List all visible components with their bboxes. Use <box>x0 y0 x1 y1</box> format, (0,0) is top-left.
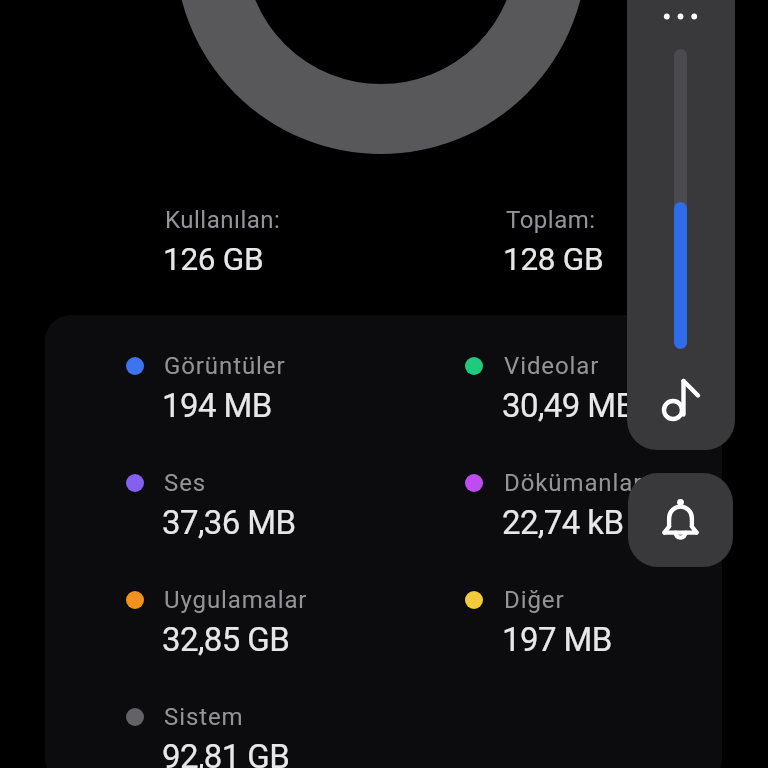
staticText: Uygulamalar <box>164 586 308 614</box>
staticText: Sistem <box>164 703 244 731</box>
staticText: Görüntüler <box>164 352 286 380</box>
staticText: 128 GB <box>503 241 604 278</box>
staticText: 126 GB <box>163 241 264 278</box>
staticText: 22,74 kB <box>502 503 624 542</box>
button[interactable] <box>45 315 722 768</box>
staticText: Dökümanlar <box>504 469 643 497</box>
staticText: Toplam: <box>506 206 596 234</box>
staticText: Kullanılan: <box>165 206 281 234</box>
button[interactable] <box>627 0 735 450</box>
staticText: 37,36 MB <box>162 503 296 542</box>
button[interactable] <box>628 473 733 567</box>
staticText: Ses <box>164 469 207 497</box>
staticText: 197 MB <box>502 620 612 659</box>
staticText: Videolar <box>504 352 600 380</box>
staticText: 32,85 GB <box>162 620 290 659</box>
staticText: Diğer <box>504 586 565 614</box>
staticText: 30,49 MB <box>502 386 636 425</box>
staticText: 194 MB <box>162 386 272 425</box>
staticText: 92,81 GB <box>162 737 290 768</box>
